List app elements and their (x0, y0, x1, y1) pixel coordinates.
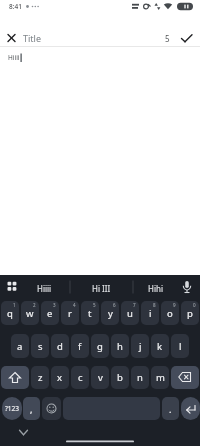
staticText: Hiiii (37, 283, 52, 294)
button[interactable]: b (111, 366, 129, 389)
staticText: e (47, 307, 53, 320)
staticText: t (88, 307, 92, 320)
button[interactable]: p (181, 301, 199, 325)
button[interactable]: c (71, 366, 89, 389)
staticText: c (78, 371, 83, 384)
button[interactable]: d (51, 334, 69, 358)
staticText: 5 (93, 302, 96, 308)
button[interactable]: n (131, 366, 149, 389)
staticText: 2 (33, 302, 36, 308)
staticText: 7 (133, 302, 136, 308)
button[interactable]: i (141, 301, 159, 325)
button[interactable]: e (41, 301, 59, 325)
button[interactable] (1, 366, 29, 389)
staticText: p (187, 307, 193, 320)
button[interactable]: v (91, 366, 109, 389)
staticText: a (17, 340, 23, 353)
button[interactable] (3, 30, 20, 47)
staticText: w (26, 307, 34, 320)
button[interactable]: , (23, 397, 40, 420)
staticText: z (38, 371, 43, 384)
button[interactable] (178, 278, 198, 298)
staticText: u (127, 307, 133, 320)
button[interactable]: s (31, 334, 49, 358)
staticText: 5 (165, 33, 170, 44)
staticText: h (117, 340, 123, 353)
button[interactable]: q (1, 301, 19, 325)
staticText: 0 (193, 302, 196, 308)
staticText: y (108, 307, 113, 320)
staticText: 6 (113, 302, 116, 308)
staticText: , (30, 403, 33, 415)
staticText: i (149, 307, 152, 320)
staticText: k (157, 340, 163, 353)
staticText: s (38, 340, 43, 353)
button[interactable]: z (31, 366, 49, 389)
staticText: 3 (53, 302, 56, 308)
staticText: d (57, 340, 63, 353)
button[interactable]: a (11, 334, 29, 358)
button[interactable]: Hihi (133, 275, 177, 301)
button[interactable]: u (121, 301, 139, 325)
button[interactable]: j (131, 334, 149, 358)
staticText: Title (23, 32, 41, 44)
button[interactable]: k (151, 334, 169, 358)
button[interactable]: m (151, 366, 169, 389)
staticText: l (179, 340, 182, 353)
button[interactable]: t (81, 301, 99, 325)
staticText: 1 (13, 302, 16, 308)
staticText: r (68, 307, 72, 320)
button[interactable]: w (21, 301, 39, 325)
staticText: g (97, 340, 103, 353)
staticText: 9 (173, 302, 176, 308)
staticText: ?123 (5, 404, 19, 413)
button[interactable] (178, 29, 196, 47)
button[interactable] (14, 425, 34, 441)
staticText: n (137, 371, 143, 384)
button[interactable] (181, 397, 200, 420)
staticText: v (98, 371, 103, 384)
button[interactable] (171, 366, 199, 389)
button[interactable]: g (91, 334, 109, 358)
button[interactable] (42, 397, 61, 420)
staticText: 4 (73, 302, 76, 308)
staticText: m (156, 371, 165, 384)
staticText: q (7, 307, 13, 320)
staticText: . (169, 403, 172, 415)
staticText: o (167, 307, 173, 320)
staticText: x (57, 371, 63, 384)
staticText: Hi III (92, 283, 111, 294)
button[interactable]: f (71, 334, 89, 358)
button[interactable]: ?123 (2, 397, 22, 420)
staticText: 8:41 (9, 2, 22, 11)
staticText: Hihi (148, 283, 163, 294)
button[interactable]: x (51, 366, 69, 389)
staticText: b (117, 371, 123, 384)
button[interactable]: r (61, 301, 79, 325)
button[interactable]: . (162, 397, 179, 420)
button[interactable]: Hiiii (18, 275, 70, 301)
staticText: 8 (153, 302, 156, 308)
staticText: Hiiii (8, 53, 20, 62)
button[interactable] (2, 278, 22, 298)
button[interactable]: o (161, 301, 179, 325)
button[interactable]: l (171, 334, 189, 358)
button[interactable]: Hi III (70, 275, 132, 301)
button[interactable]: y (101, 301, 119, 325)
button[interactable]: h (111, 334, 129, 358)
staticText: f (78, 340, 82, 353)
staticText: j (139, 340, 142, 353)
